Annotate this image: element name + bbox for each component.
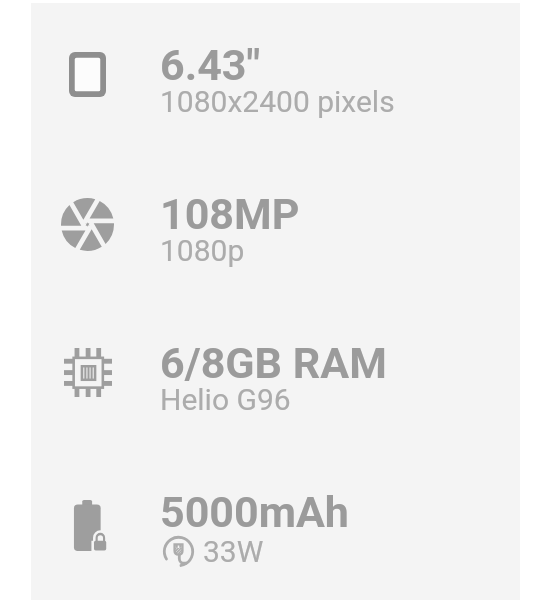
other: Fast charging <box>162 535 195 568</box>
other: Camera <box>61 198 114 251</box>
button[interactable] <box>32 463 521 583</box>
staticText: 6/8GB RAM <box>160 338 387 388</box>
staticText: Helio G96 <box>160 382 291 417</box>
staticText: 33W <box>203 534 264 569</box>
other: Display size <box>69 52 106 97</box>
staticText: 6.43" <box>160 40 261 90</box>
other: Battery <box>73 499 107 553</box>
button[interactable] <box>32 16 521 136</box>
staticText: 5000mAh <box>160 487 349 537</box>
staticText: 1080x2400 pixels <box>160 84 395 119</box>
button[interactable] <box>32 314 521 434</box>
button[interactable]: Fast charging <box>162 534 264 569</box>
staticText: 108MP <box>160 189 300 239</box>
staticText: 1080p <box>160 233 245 268</box>
other: Processor and memory <box>64 348 112 397</box>
button[interactable] <box>32 165 521 285</box>
